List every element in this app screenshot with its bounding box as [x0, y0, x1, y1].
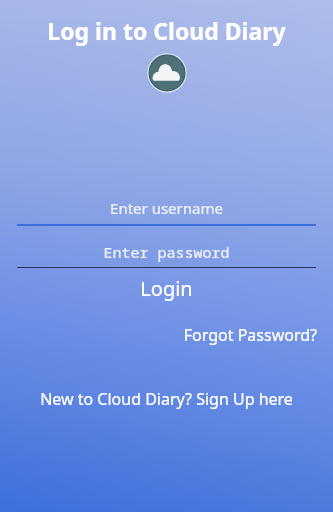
staticText: Login — [140, 275, 193, 302]
staticText: Enter username — [17, 198, 316, 218]
staticText: Forgot Password? — [183, 324, 317, 346]
button[interactable]: Enter password — [17, 242, 316, 268]
button[interactable]: Login — [0, 275, 333, 302]
staticText: Log in to Cloud Diary — [0, 15, 333, 46]
button[interactable]: Forgot Password? — [183, 324, 317, 346]
staticText: Enter password — [17, 242, 316, 262]
button[interactable]: New to Cloud Diary? Sign Up here — [40, 388, 293, 410]
button[interactable]: Cloud Diary logo — [147, 53, 187, 93]
staticText: New to Cloud Diary? Sign Up here — [40, 388, 293, 410]
button[interactable]: Enter username — [17, 198, 316, 226]
